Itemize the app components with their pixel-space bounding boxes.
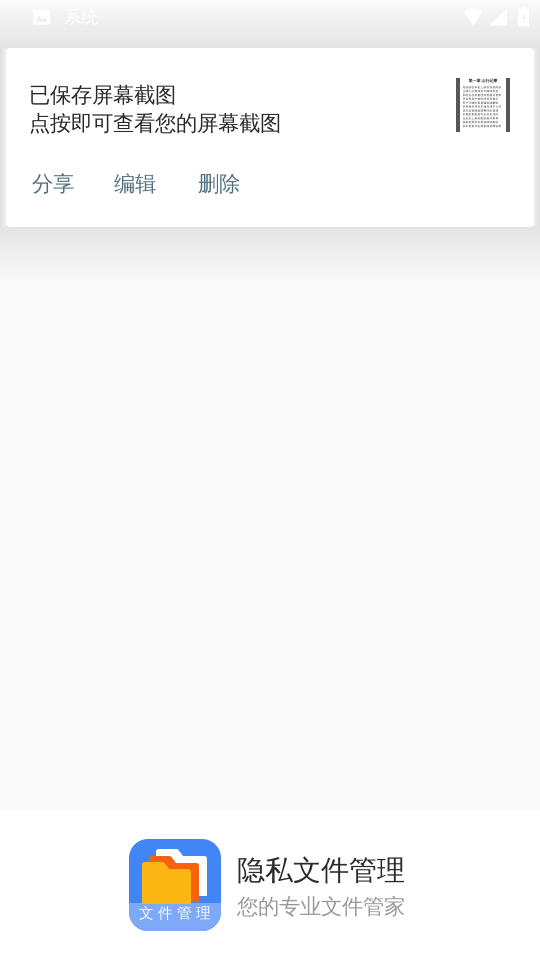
button[interactable]: 文 件 管 理 xyxy=(129,838,405,931)
button[interactable]: 已保存屏幕截图 xyxy=(6,48,534,162)
staticText: 并在列表中按时间排列显示 xyxy=(462,97,498,101)
staticText: 隐私文件管理 xyxy=(237,853,405,888)
staticText: 系统 xyxy=(64,6,98,28)
button[interactable]: 删除 xyxy=(198,162,242,206)
staticText: 点按即可查看您的屏幕截图 xyxy=(29,110,281,136)
staticText: 已保存屏幕截图 xyxy=(29,82,176,108)
staticText: 若需恢复数据可从历史找回 xyxy=(462,113,498,116)
staticText: 用户可随时查看编辑或删除 xyxy=(462,101,498,104)
staticText: 感谢使用本应用祝阅读愉快 xyxy=(462,121,498,124)
staticText: 编辑 xyxy=(114,171,156,197)
staticText: 文 件 管 理 xyxy=(139,904,211,922)
staticText: 第一章 山行记事 xyxy=(468,78,497,83)
staticText: 以便下次离线仍可继续浏览 xyxy=(462,90,498,93)
staticText: 版本更新日志请参阅官网说明 xyxy=(462,124,501,128)
button[interactable]: 编辑 xyxy=(114,162,198,206)
staticText: 阅读器在本机上保存当前内容 xyxy=(462,86,501,89)
staticText: 请在设置面板调整同步选项 xyxy=(462,109,498,112)
button[interactable]: 分享 xyxy=(32,162,114,206)
staticText: 删除 xyxy=(198,171,240,197)
staticText: 您的专业文件管家 xyxy=(237,894,405,920)
staticText: 点击右上角的图标展开菜单 xyxy=(462,117,498,120)
staticText: 分享 xyxy=(32,171,74,197)
staticText: 所有操作均在本地完成不上传 xyxy=(462,105,501,108)
staticText: 系统会自动整理归档相关资料 xyxy=(462,93,501,97)
